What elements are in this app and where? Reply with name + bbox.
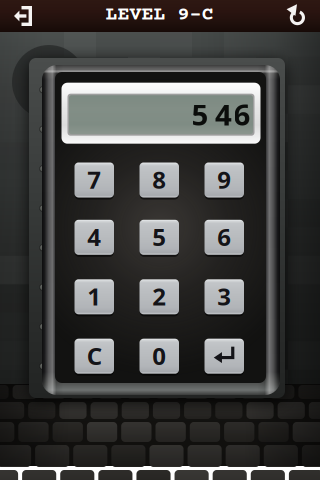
staticText: 4 xyxy=(87,221,101,253)
staticText: C xyxy=(87,340,102,372)
staticText: 4 xyxy=(215,95,232,134)
staticText: 7 xyxy=(87,164,101,195)
staticText: 9 xyxy=(217,164,231,195)
button[interactable]: 5 xyxy=(139,219,179,256)
staticText: 3 xyxy=(217,280,231,312)
button[interactable]: C xyxy=(74,338,114,375)
button[interactable]: 0 xyxy=(139,338,179,375)
button[interactable]: 8 xyxy=(139,161,179,198)
button[interactable]: 7 xyxy=(74,161,114,198)
button[interactable]: 4 xyxy=(74,219,114,256)
button[interactable]: 1 xyxy=(74,278,114,315)
staticText: 2 xyxy=(152,280,166,312)
button[interactable]: Exit level xyxy=(0,0,44,32)
staticText: 5 xyxy=(191,95,208,134)
staticText: LEVEL 9-C xyxy=(105,4,213,26)
staticText: 6 xyxy=(233,95,250,134)
button[interactable]: 6 xyxy=(204,219,244,256)
staticText: 0 xyxy=(152,340,166,372)
button[interactable]: 9 xyxy=(204,161,244,198)
button[interactable]: Restart level xyxy=(275,0,320,32)
button[interactable]: Enter xyxy=(204,338,244,375)
staticText: 6 xyxy=(217,221,231,253)
staticText: 1 xyxy=(87,280,101,312)
staticText: 8 xyxy=(152,164,166,195)
staticText: 5 xyxy=(152,221,166,253)
button[interactable]: 2 xyxy=(139,278,179,315)
button[interactable]: 3 xyxy=(204,278,244,315)
